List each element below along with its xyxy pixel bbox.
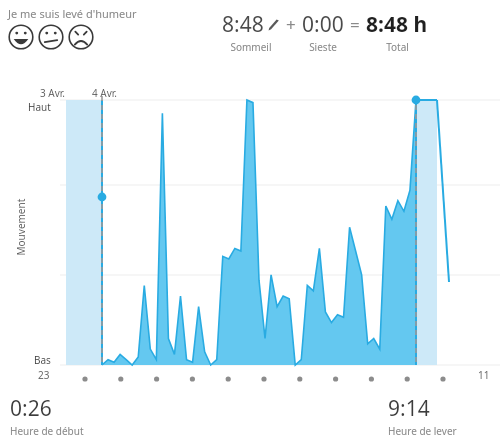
- staticText: 9:14: [388, 394, 430, 423]
- staticText: 23: [38, 368, 50, 382]
- staticText: 8:48: [222, 10, 264, 39]
- staticText: 8:48 h: [366, 10, 428, 39]
- staticText: 4 Avr.: [92, 86, 117, 100]
- staticText: 0:00: [302, 10, 344, 39]
- staticText: =: [350, 13, 360, 36]
- staticText: Bas: [34, 353, 51, 367]
- staticText: 0:26: [10, 394, 52, 423]
- staticText: Mouvement: [13, 198, 27, 255]
- button[interactable]: Modifier la durée de sommeil: [268, 19, 280, 31]
- button[interactable]: Humeur heureuse: [8, 24, 34, 50]
- staticText: 3 Avr.: [40, 86, 65, 100]
- staticText: Total: [386, 40, 409, 54]
- staticText: Haut: [28, 100, 51, 114]
- staticText: Heure de lever: [388, 424, 457, 438]
- button[interactable]: Humeur neutre: [38, 24, 64, 50]
- staticText: 11: [478, 368, 490, 382]
- staticText: Heure de début: [10, 424, 84, 438]
- button[interactable]: Humeur triste: [68, 24, 94, 50]
- staticText: Sieste: [309, 40, 337, 54]
- staticText: +: [286, 13, 296, 36]
- staticText: Sommeil: [230, 40, 272, 54]
- staticText: Je me suis levé d'humeur: [8, 6, 137, 21]
